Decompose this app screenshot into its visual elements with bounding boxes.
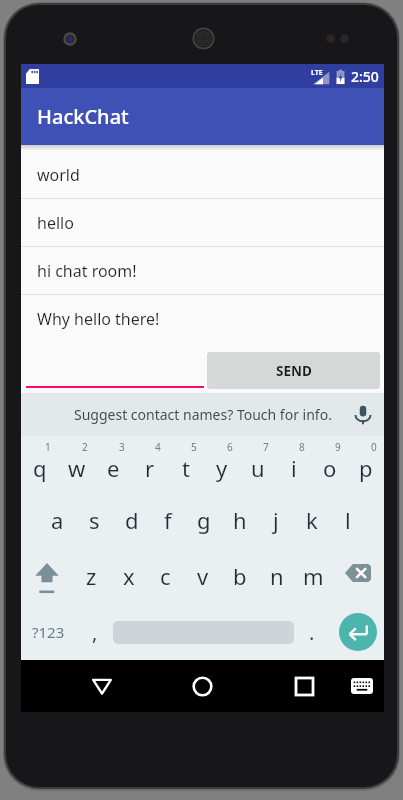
staticText: hello [37,212,74,234]
staticText: q [33,453,47,483]
staticText: x [123,561,135,591]
button[interactable]: Hide keyboard [340,660,384,712]
staticText: . [309,619,315,646]
button[interactable]: Back [80,660,124,712]
staticText: y [216,453,228,483]
staticText: n [270,561,284,591]
button[interactable]: . [296,604,328,660]
button[interactable]: SEND [207,352,380,389]
button[interactable]: f [150,492,186,548]
button[interactable]: 8 [276,436,312,492]
button[interactable]: Home [180,660,224,712]
staticText: 2 [82,440,88,454]
button[interactable]: l [330,492,366,548]
button[interactable]: b [221,548,258,604]
button[interactable]: hi chat room! [21,247,384,295]
staticText: c [160,561,171,591]
staticText: m [303,561,324,591]
staticText: h [233,505,247,535]
staticText: t [182,453,190,483]
button[interactable]: ?123 [21,604,75,660]
staticText: g [197,505,211,535]
button[interactable]: Suggest contact names? Touch for info. [74,405,332,424]
staticText: b [233,561,247,591]
staticText: 8 [299,440,305,454]
staticText: o [323,453,337,483]
button[interactable]: world [21,151,384,199]
staticText: hi chat room! [37,260,137,282]
button[interactable]: z [73,548,110,604]
staticText: Suggest contact names? Touch for info. [74,405,332,424]
staticText: p [359,453,373,483]
staticText: ?123 [32,622,65,642]
button[interactable]: c [147,548,184,604]
button[interactable]: 4 [132,436,168,492]
button[interactable]: 1 [21,436,58,492]
staticText: f [164,505,172,535]
staticText: 0 [371,440,377,454]
staticText: 6 [227,440,233,454]
staticText: 3 [119,440,125,454]
staticText: l [345,505,351,535]
button[interactable]: Enter [339,613,377,651]
button[interactable]: h [222,492,258,548]
button[interactable]: Shift [21,548,73,604]
staticText: 5 [191,440,197,454]
staticText: v [197,561,209,591]
button[interactable]: s [76,492,113,548]
button[interactable]: 3 [95,436,132,492]
staticText: e [107,453,120,483]
staticText: 9 [335,440,341,454]
button[interactable]: 0 [348,436,384,492]
staticText: HackChat [37,103,129,130]
button[interactable]: Why hello there! [21,295,384,343]
staticText: r [145,453,155,483]
staticText: 4 [155,440,161,454]
staticText: a [51,505,64,535]
staticText: LTE [311,68,323,78]
button[interactable]: 6 [204,436,240,492]
staticText: 1 [45,440,51,454]
staticText: s [89,505,100,535]
button[interactable]: j [258,492,294,548]
staticText: 7 [263,440,269,454]
button[interactable]: x [110,548,147,604]
button[interactable]: 9 [312,436,348,492]
staticText: i [291,453,297,483]
staticText: d [125,505,139,535]
button[interactable]: 2 [58,436,95,492]
staticText: j [273,505,279,535]
button[interactable]: n [258,548,295,604]
button[interactable]: v [184,548,221,604]
staticText: w [68,453,86,483]
staticText: k [306,505,318,535]
button[interactable]: m [295,548,332,604]
button[interactable]: k [294,492,330,548]
button[interactable]: a [39,492,76,548]
button[interactable]: Voice input [350,402,376,428]
button[interactable]: Backspace [332,548,384,604]
button[interactable]: g [186,492,222,548]
button[interactable]: 5 [168,436,204,492]
button[interactable]: , [79,604,111,660]
button[interactable]: Recents [282,660,326,712]
staticText: u [251,453,265,483]
staticText: SEND [276,362,312,380]
staticText: world [37,164,80,186]
staticText: z [86,561,97,591]
button[interactable]: 7 [240,436,276,492]
staticText: , [92,619,98,646]
button[interactable]: d [113,492,150,548]
staticText: 2:50 [351,67,379,86]
button[interactable]: hello [21,199,384,247]
staticText: Why hello there! [37,308,160,330]
